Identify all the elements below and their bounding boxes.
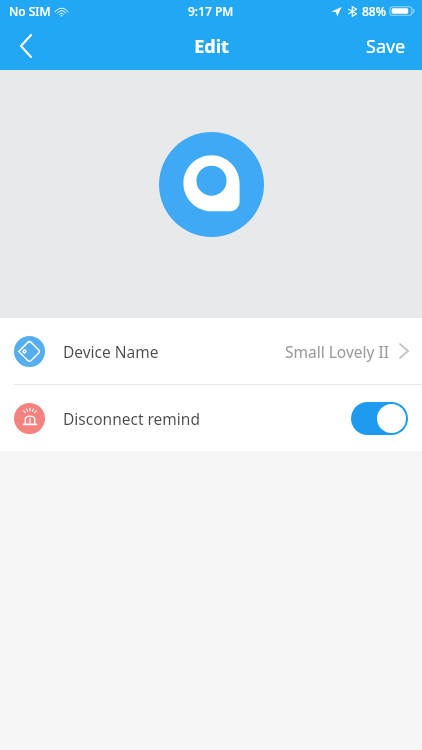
button[interactable]: Save bbox=[350, 22, 422, 70]
button[interactable]: Disconnect remind bbox=[0, 385, 422, 451]
staticText: Device Name bbox=[63, 341, 159, 362]
staticText: 9:17 PM bbox=[188, 3, 234, 19]
staticText: No SIM bbox=[9, 3, 51, 19]
button[interactable]: Back bbox=[0, 22, 52, 70]
staticText: Disconnect remind bbox=[63, 408, 200, 429]
staticText: Small Lovely II bbox=[285, 341, 389, 362]
staticText: Save bbox=[366, 34, 406, 59]
button[interactable]: Disconnect remind toggle bbox=[351, 402, 408, 435]
staticText: 88% bbox=[362, 3, 386, 19]
button[interactable]: Device Name bbox=[0, 318, 422, 384]
staticText: Edit bbox=[194, 34, 229, 59]
